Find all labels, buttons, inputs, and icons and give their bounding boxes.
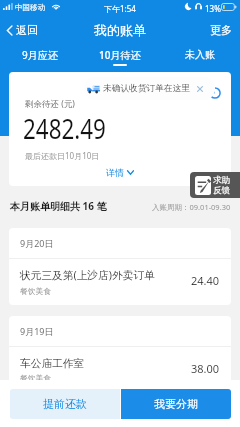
- staticText: 中国移动: [15, 3, 45, 12]
- button[interactable]: 10月待还: [80, 42, 160, 68]
- button[interactable]: 状元三及第(上沙店)外卖订单: [9, 259, 231, 305]
- staticText: 剩余待还 (元): [25, 98, 75, 110]
- staticText: 下午1:54: [104, 3, 136, 14]
- staticText: 餐饮美食: [20, 373, 52, 383]
- staticText: 餐饮美食: [20, 286, 52, 296]
- staticText: 9月19日: [20, 325, 54, 337]
- staticText: 9月应还: [22, 48, 58, 62]
- button[interactable]: 返回: [0, 23, 46, 37]
- staticText: 求助 反馈: [213, 175, 230, 196]
- staticText: 38.00: [191, 361, 220, 376]
- staticText: 详情: [106, 167, 124, 178]
- other: Close tip: [197, 86, 203, 92]
- staticText: 最后还款日10月10日: [25, 150, 100, 161]
- staticText: 我的账单: [94, 22, 146, 38]
- staticText: 返回: [16, 23, 38, 37]
- button[interactable]: 未确认收货订单在这里: [84, 77, 215, 100]
- button[interactable]: 我要分期: [121, 389, 231, 419]
- button[interactable]: 更多: [202, 23, 240, 37]
- staticText: 未入账: [185, 48, 215, 61]
- staticText: 10月待还: [99, 48, 141, 62]
- button[interactable]: 提前还款: [10, 389, 120, 419]
- staticText: 13%: [205, 3, 221, 14]
- staticText: 24.40: [191, 273, 220, 288]
- button[interactable]: 未入账: [160, 42, 240, 68]
- staticText: 状元三及第(上沙店)外卖订单: [20, 268, 155, 283]
- staticText: 2482.49: [23, 109, 106, 147]
- staticText: 本月账单明细共 16 笔: [10, 199, 107, 213]
- staticText: 入账周期：09.01-09.30: [152, 202, 231, 212]
- button[interactable]: 详情: [100, 165, 140, 180]
- other: Customer service: [209, 87, 221, 99]
- staticText: 未确认收货订单在这里: [103, 83, 190, 94]
- staticText: 提前还款: [43, 397, 87, 411]
- button[interactable]: 车公庙工作室: [9, 347, 231, 393]
- staticText: 我要分期: [154, 397, 198, 411]
- button[interactable]: 求助 反馈: [190, 172, 240, 198]
- staticText: 9月20日: [20, 237, 54, 249]
- staticText: 车公庙工作室: [20, 357, 85, 370]
- button[interactable]: 9月应还: [0, 42, 80, 68]
